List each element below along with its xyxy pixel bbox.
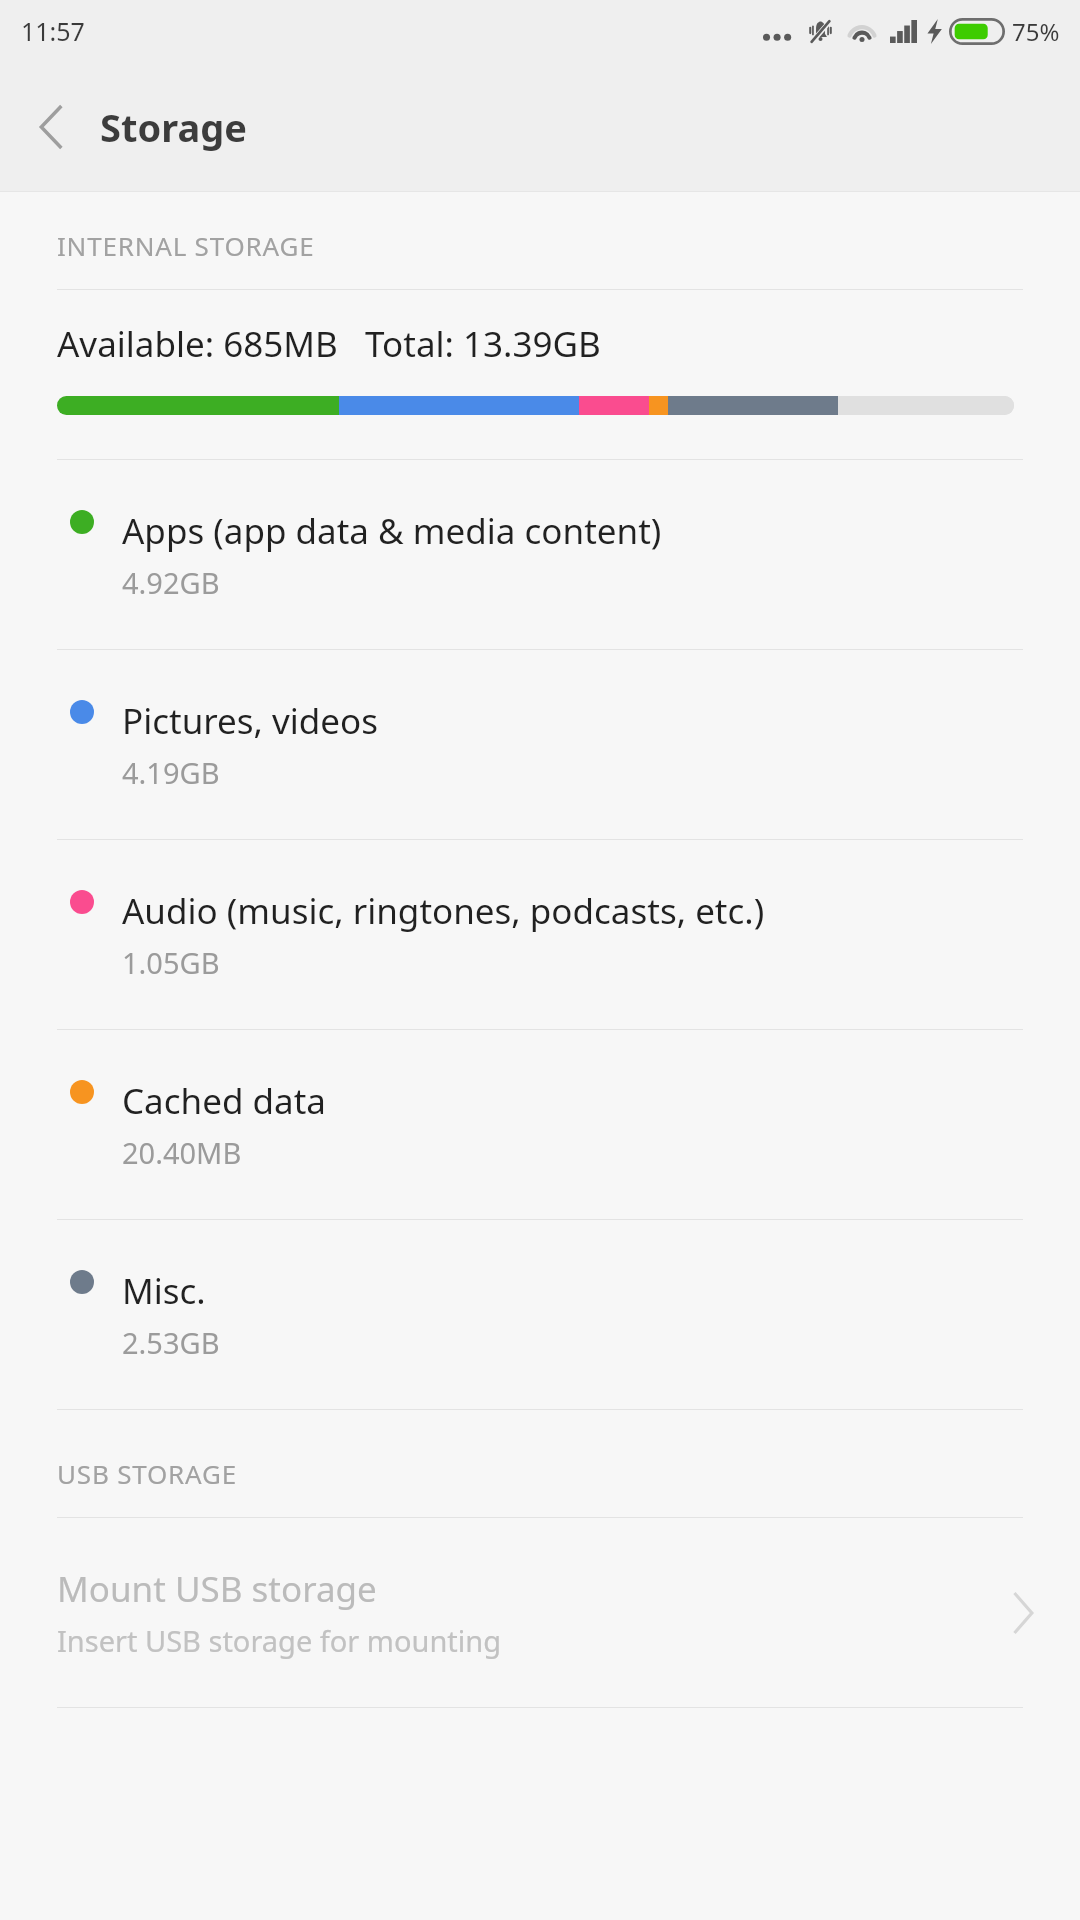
staticText: INTERNAL STORAGE xyxy=(57,228,315,263)
staticText: Audio (music, ringtones, podcasts, etc.) xyxy=(122,887,765,935)
button[interactable]: Pictures, videos xyxy=(0,650,1080,839)
staticText: Apps (app data & media content) xyxy=(122,507,662,555)
button[interactable]: Back xyxy=(18,95,82,159)
staticText: Pictures, videos xyxy=(122,697,379,745)
staticText: USB STORAGE xyxy=(57,1456,237,1491)
staticText: 11:57 xyxy=(21,14,85,48)
button[interactable]: Apps (app data & media content) xyxy=(0,460,1080,649)
staticText: Cached data xyxy=(122,1077,326,1125)
staticText: 75% xyxy=(1012,15,1060,48)
staticText: 4.92GB xyxy=(122,563,220,602)
button[interactable]: Misc. xyxy=(0,1220,1080,1409)
staticText: Storage xyxy=(100,101,247,153)
button[interactable]: Mount USB storage xyxy=(0,1518,1080,1707)
staticText: 20.40MB xyxy=(122,1133,242,1172)
button[interactable]: Audio (music, ringtones, podcasts, etc.) xyxy=(0,840,1080,1029)
button[interactable]: Cached data xyxy=(0,1030,1080,1219)
staticText: Available: 685MB Total: 13.39GB xyxy=(57,320,601,368)
staticText: Misc. xyxy=(122,1267,206,1315)
staticText: 1.05GB xyxy=(122,943,220,982)
staticText: Insert USB storage for mounting xyxy=(57,1621,502,1660)
staticText: 4.19GB xyxy=(122,753,220,792)
staticText: Mount USB storage xyxy=(57,1565,377,1613)
staticText: 2.53GB xyxy=(122,1323,220,1362)
